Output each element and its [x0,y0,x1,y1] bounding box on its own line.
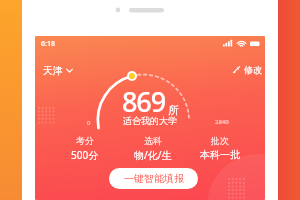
staticText: 500分 [71,148,99,162]
staticText: 869 [122,83,166,120]
staticText: 所 [168,103,179,117]
staticText: 0 [87,119,91,127]
staticText: 修改 [244,64,262,75]
button[interactable]: 一键智能填报 [109,168,198,189]
staticText: 2840 [215,118,229,126]
staticText: 适合我的大学 [123,115,177,126]
button[interactable]: 批次 [186,135,253,161]
staticText: 一键智能填报 [124,172,184,185]
staticText: 本科一批 [200,148,240,161]
button[interactable]: 选科 [119,135,186,162]
button[interactable]: 考分 [51,135,119,162]
staticText: 物/化/生 [134,148,172,162]
other: Edit [232,65,241,74]
staticText: 考分 [76,135,94,146]
staticText: 天津 [43,64,63,77]
staticText: 批次 [211,135,229,146]
staticText: 选科 [144,135,162,146]
button[interactable]: 天津 [40,62,76,79]
staticText: 6:18 [41,39,55,49]
button[interactable]: Edit [229,62,265,77]
